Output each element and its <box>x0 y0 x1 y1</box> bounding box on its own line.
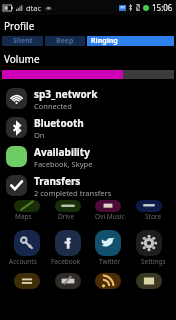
staticText: Ringing <box>91 36 118 46</box>
staticText: dtac <box>26 3 42 13</box>
staticText: Facebook, Skype <box>34 159 93 169</box>
staticText: 2 completed transfers <box>34 188 112 198</box>
staticText: Bluetooth <box>34 116 84 130</box>
staticText: sp3_network <box>34 87 98 101</box>
button[interactable]: Silent <box>2 36 43 46</box>
button[interactable]: Ringing <box>87 36 174 46</box>
staticText: Availability <box>34 145 90 159</box>
button[interactable]: Accounts <box>14 230 40 256</box>
staticText: Drive <box>58 212 75 221</box>
button[interactable]: Bluetooth <box>0 113 176 142</box>
button[interactable]: Facebook <box>55 230 81 256</box>
staticText: Ovi Music <box>95 212 125 221</box>
button[interactable]: Twitter <box>95 230 121 256</box>
button[interactable]: sp3_network <box>0 84 176 113</box>
staticText: Facebook <box>51 257 81 266</box>
button[interactable]: Transfers <box>0 171 176 200</box>
staticText: Store <box>145 212 162 221</box>
button[interactable]: Availability <box>0 142 176 171</box>
staticText: On <box>34 130 45 140</box>
staticText: Transfers <box>34 174 81 188</box>
button[interactable]: Beep <box>45 36 85 46</box>
staticText: Accounts <box>9 257 37 266</box>
staticText: Profile <box>4 19 35 33</box>
button[interactable]: Settings <box>136 230 162 256</box>
staticText: Settings <box>141 257 166 266</box>
staticText: Twitter <box>99 257 121 266</box>
staticText: Volume <box>4 52 40 66</box>
button[interactable] <box>2 70 174 79</box>
staticText: Beep <box>56 36 74 46</box>
staticText: Maps <box>15 212 32 221</box>
staticText: Silent <box>13 36 33 46</box>
staticText: 15:06 <box>152 2 173 13</box>
staticText: Connected <box>34 101 72 111</box>
